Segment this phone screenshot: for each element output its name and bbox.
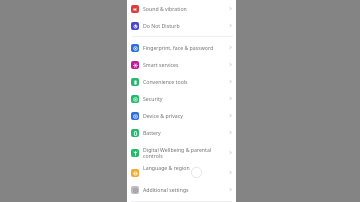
button[interactable]: Convenience tools [127,73,236,90]
button[interactable]: Sound & vibration [127,0,236,17]
staticText: Digital Wellbeing & parental controls [143,146,226,160]
staticText: Additional settings [143,186,189,193]
staticText: Convenience tools [143,78,188,85]
button[interactable]: Digital Wellbeing & parental controls [127,141,236,164]
button[interactable]: Additional settings [127,181,236,198]
button[interactable]: Battery [127,124,236,141]
button[interactable]: Device & privacy [127,107,236,124]
staticText: Fingerprint, face & password [143,44,214,51]
staticText: Device & privacy [143,112,183,119]
button[interactable]: Do Not Disturb [127,17,236,34]
staticText: Smart services [143,61,179,68]
staticText: Do Not Disturb [143,22,180,29]
button[interactable]: Smart services [127,56,236,73]
staticText: Battery [143,129,161,136]
button[interactable]: Security [127,90,236,107]
button[interactable]: Language & region [127,164,236,181]
button[interactable]: Fingerprint, face & password [127,39,236,56]
staticText: Language & region [143,164,190,171]
staticText: Security [143,95,163,102]
staticText: Sound & vibration [143,5,187,12]
